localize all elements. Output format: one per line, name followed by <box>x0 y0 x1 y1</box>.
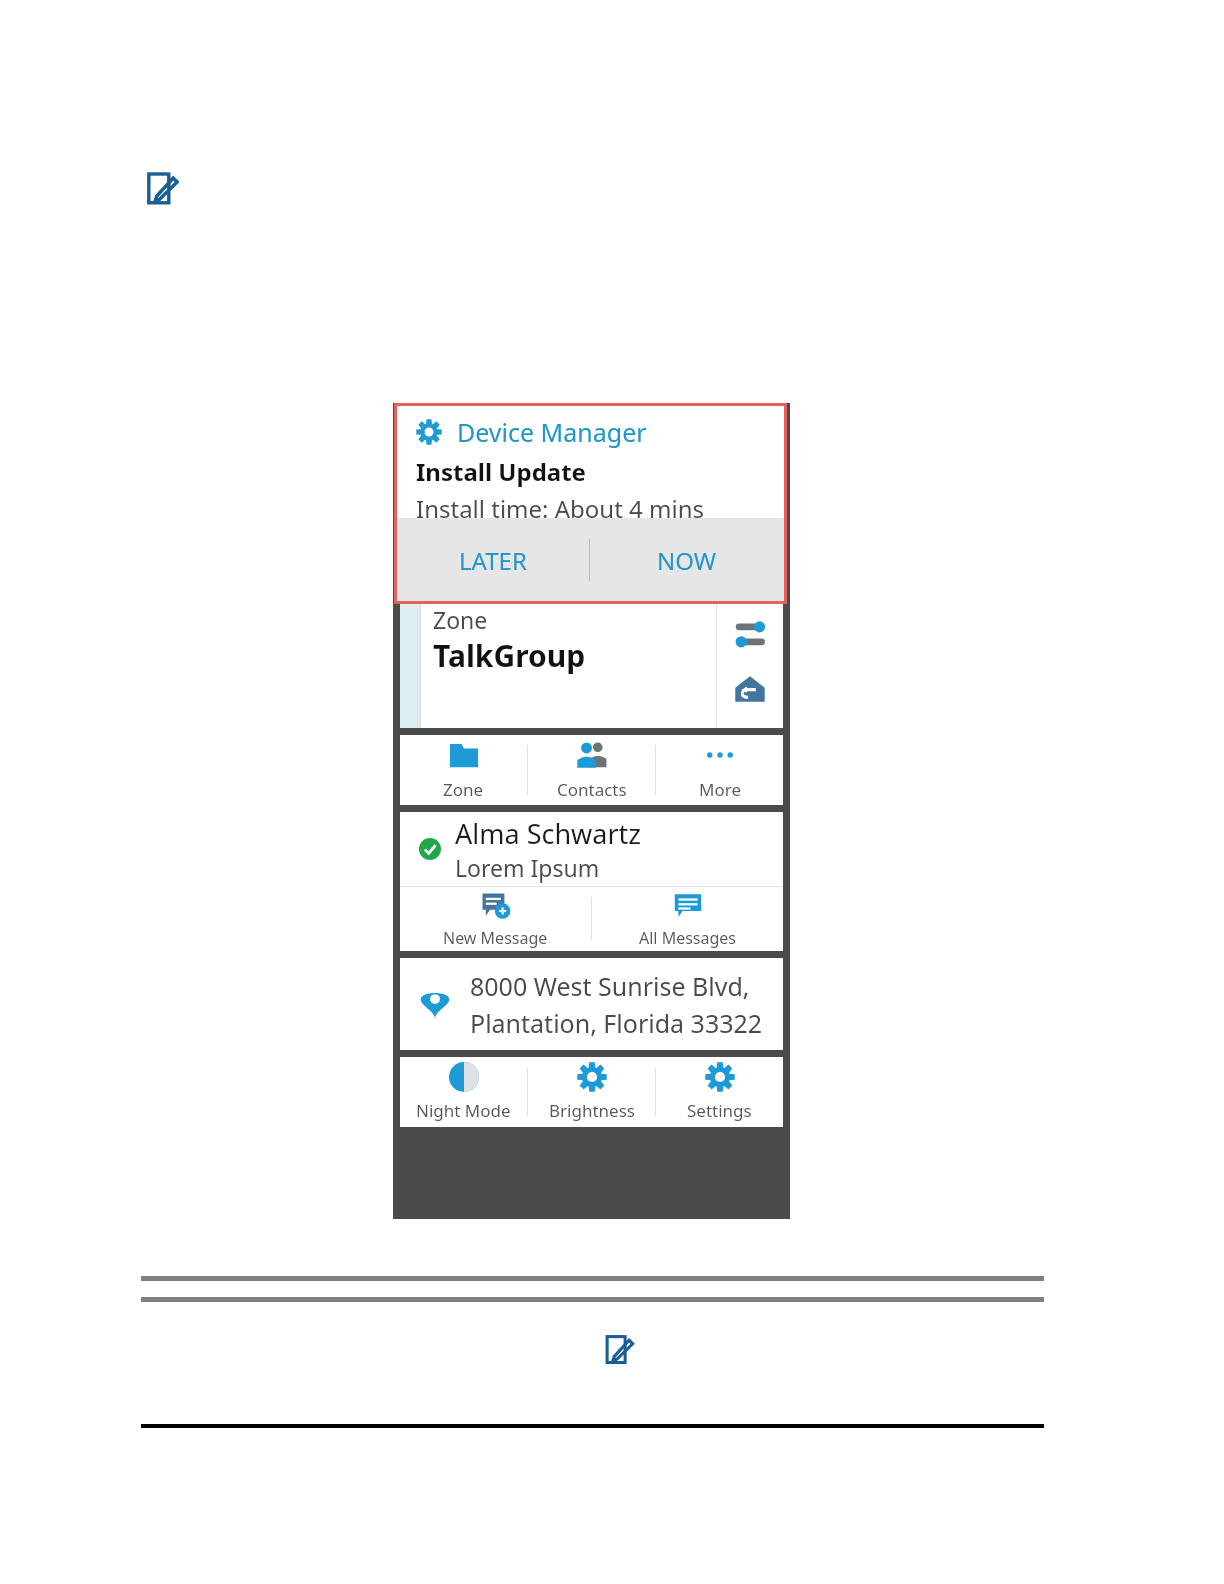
staticText: Alma Schwartz <box>455 815 642 852</box>
button[interactable]: Zone <box>400 735 527 805</box>
staticText: Device Manager <box>457 415 647 449</box>
staticText: Install Update <box>416 455 586 488</box>
staticText: Lorem Ipsum <box>455 852 600 883</box>
staticText: Settings <box>687 1099 752 1122</box>
button[interactable]: 8000 West Sunrise Blvd, <box>400 958 783 1050</box>
staticText: Plantation, Florida 33322 <box>470 1006 763 1040</box>
staticText: LATER <box>459 544 527 577</box>
button[interactable]: Brightness <box>528 1057 655 1127</box>
staticText: New Message <box>443 927 548 949</box>
button[interactable]: All Messages <box>592 887 783 951</box>
staticText: NOW <box>657 544 717 577</box>
staticText: Zone <box>443 778 484 801</box>
button[interactable]: Night Mode <box>400 1057 527 1127</box>
staticText: More <box>699 778 741 801</box>
button[interactable]: More <box>656 735 783 805</box>
staticText: 8000 West Sunrise Blvd, <box>470 969 750 1003</box>
button[interactable]: Contacts <box>528 735 655 805</box>
staticText: TalkGroup <box>433 635 586 676</box>
staticText: Brightness <box>549 1099 635 1122</box>
staticText: Zone <box>433 604 488 635</box>
button[interactable]: Alma Schwartz <box>400 812 783 886</box>
button[interactable]: LATER <box>396 518 589 602</box>
button[interactable]: Home <box>731 670 769 708</box>
button[interactable]: Settings <box>656 1057 783 1127</box>
button[interactable]: NOW <box>590 518 784 602</box>
staticText: Install time: About 4 mins <box>416 492 704 518</box>
staticText: Contacts <box>557 778 627 801</box>
button[interactable]: Zone <box>400 604 783 728</box>
button[interactable]: Edit <box>601 1333 637 1369</box>
staticText: Night Mode <box>416 1099 511 1122</box>
staticText: All Messages <box>639 927 737 949</box>
button[interactable]: Sliders <box>731 616 769 654</box>
button[interactable]: Edit <box>142 170 182 210</box>
button[interactable]: New Message <box>400 887 591 951</box>
